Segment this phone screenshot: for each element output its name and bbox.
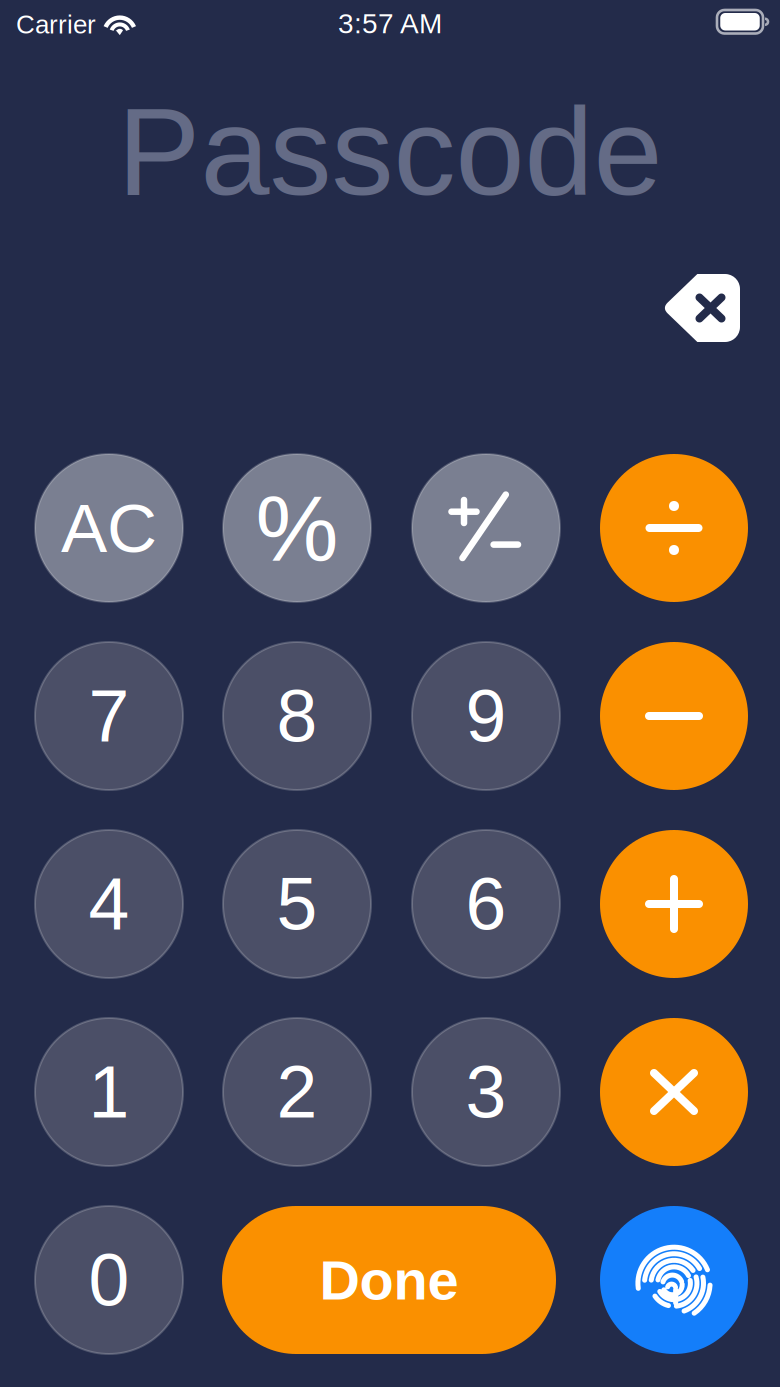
staticText: 8 <box>276 675 317 757</box>
button[interactable]: Plus <box>600 830 748 978</box>
button[interactable]: 6 <box>412 830 560 978</box>
button[interactable]: Minus <box>600 642 748 790</box>
button[interactable]: 9 <box>412 642 560 790</box>
staticText: 4 <box>88 863 129 945</box>
button[interactable]: 3 <box>412 1018 560 1166</box>
button[interactable]: 0 <box>35 1206 183 1354</box>
button[interactable]: Multiply <box>600 1018 748 1166</box>
button[interactable]: 4 <box>35 830 183 978</box>
button[interactable]: 1 <box>35 1018 183 1166</box>
button[interactable]: Delete <box>646 260 756 356</box>
staticText: 3:57 AM <box>338 8 442 39</box>
staticText: 5 <box>276 863 317 945</box>
button[interactable]: 7 <box>35 642 183 790</box>
button[interactable]: 5 <box>223 830 371 978</box>
button[interactable]: % <box>223 454 371 602</box>
staticText: % <box>255 476 338 580</box>
button[interactable]: 2 <box>223 1018 371 1166</box>
staticText: 9 <box>465 675 506 757</box>
button[interactable]: Plus minus <box>412 454 560 602</box>
button[interactable]: AC <box>35 454 183 602</box>
button[interactable]: Divide <box>600 454 748 602</box>
staticText: 2 <box>276 1051 317 1133</box>
staticText: 7 <box>88 675 129 757</box>
staticText: Passcode <box>117 82 662 221</box>
staticText: 1 <box>88 1051 129 1133</box>
staticText: 3 <box>465 1051 506 1133</box>
button[interactable]: 8 <box>223 642 371 790</box>
staticText: Carrier <box>16 10 96 39</box>
staticText: Done <box>319 1249 458 1311</box>
button[interactable]: Done <box>222 1206 556 1354</box>
button[interactable]: Touch ID <box>600 1206 748 1354</box>
staticText: AC <box>61 489 157 567</box>
staticText: 0 <box>88 1239 129 1321</box>
staticText: 6 <box>465 863 506 945</box>
